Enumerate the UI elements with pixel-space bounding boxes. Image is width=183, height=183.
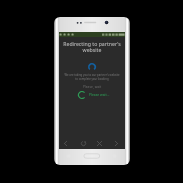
button[interactable]: Forward xyxy=(111,138,122,149)
staticText: We are taking you to our partner's websi… xyxy=(59,73,125,81)
button[interactable]: Reload xyxy=(78,138,89,149)
staticText: Please, wait xyxy=(59,84,125,88)
button[interactable]: Close xyxy=(94,138,105,149)
staticText: Please wait... xyxy=(89,92,110,96)
staticText: Redirecting to partner's website xyxy=(59,40,125,53)
button[interactable]: Back xyxy=(60,138,71,149)
